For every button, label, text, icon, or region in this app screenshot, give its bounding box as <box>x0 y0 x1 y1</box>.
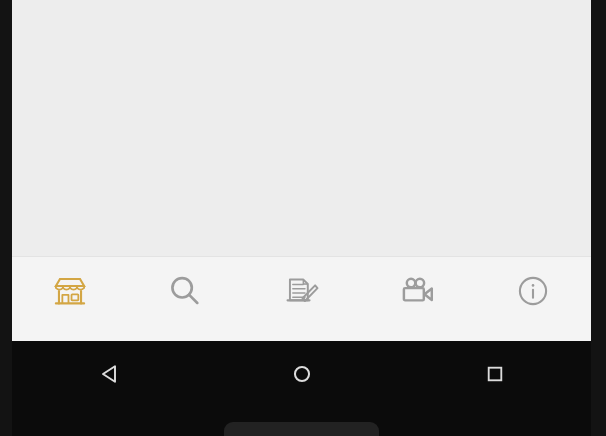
button[interactable]: Home <box>205 341 398 407</box>
button[interactable]: Information <box>475 256 591 341</box>
button[interactable]: Contracts <box>243 256 359 341</box>
button[interactable]: Store <box>12 256 127 341</box>
button[interactable]: Back <box>12 341 205 407</box>
button[interactable]: Videos <box>359 256 475 341</box>
button[interactable]: Search <box>127 256 243 341</box>
button[interactable]: Recent apps <box>398 341 591 407</box>
